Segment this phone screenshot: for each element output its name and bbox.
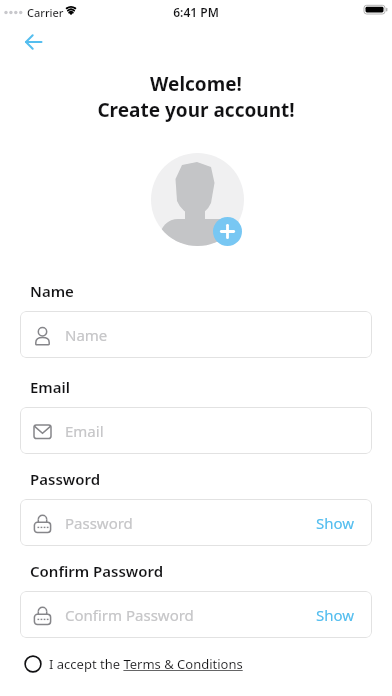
staticText: Email <box>30 377 71 397</box>
staticText: Email <box>65 421 104 441</box>
staticText: I accept the Terms & Conditions <box>49 655 243 673</box>
staticText: 6:41 PM <box>0 4 392 20</box>
button[interactable] <box>213 217 242 246</box>
button[interactable]: I accept the Terms & Conditions <box>24 655 243 673</box>
staticText: Password <box>30 469 101 489</box>
button[interactable]: Password <box>20 499 372 546</box>
staticText: Welcome! Create your account! <box>0 71 392 122</box>
staticText: Name <box>65 325 108 345</box>
staticText: Name <box>30 281 74 301</box>
staticText: Confirm Password <box>30 561 164 581</box>
button[interactable]: Name <box>20 311 372 358</box>
staticText: Carrier <box>27 5 64 20</box>
button[interactable]: Email <box>20 407 372 454</box>
staticText: Confirm Password <box>65 605 194 625</box>
button[interactable]: Confirm Password <box>20 591 372 638</box>
button[interactable]: Show <box>316 513 372 533</box>
staticText: Password <box>65 513 133 533</box>
button[interactable]: Show <box>316 605 372 625</box>
button[interactable] <box>18 30 50 56</box>
